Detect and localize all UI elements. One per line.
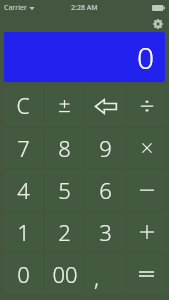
staticText: 0 [137, 37, 155, 78]
staticText: 4 [17, 175, 30, 205]
button[interactable]: Divide [127, 86, 166, 126]
button[interactable]: 7 [3, 128, 43, 168]
button[interactable]: 6 [86, 170, 125, 210]
button[interactable]: Backspace [86, 86, 125, 126]
button[interactable]: Plus [127, 212, 166, 252]
button[interactable]: Settings [151, 17, 165, 31]
staticText: , [94, 262, 99, 292]
staticText: 8 [58, 133, 71, 163]
button[interactable]: 0 [3, 254, 43, 294]
staticText: 00 [52, 259, 78, 289]
staticText: 3 [99, 217, 112, 247]
button[interactable]: Multiply [127, 128, 166, 168]
button[interactable]: Equals [127, 254, 166, 294]
button[interactable]: Decimal separator [86, 254, 125, 294]
button[interactable]: 3 [86, 212, 125, 252]
staticText: 2:28 AM [71, 3, 98, 13]
button[interactable]: 5 [45, 170, 84, 210]
staticText: Carrier [4, 3, 27, 13]
staticText: 5 [58, 175, 71, 205]
staticText: 2 [58, 217, 71, 247]
button[interactable]: 4 [3, 170, 43, 210]
staticText: 7 [17, 133, 30, 163]
button[interactable]: Minus [127, 170, 166, 210]
staticText: 0 [17, 259, 30, 289]
button[interactable]: 1 [3, 212, 43, 252]
button[interactable]: 0 [4, 32, 165, 82]
staticText: 9 [99, 133, 112, 163]
button[interactable]: Plus minus [45, 86, 84, 126]
button[interactable]: 9 [86, 128, 125, 168]
button[interactable]: 00 [45, 254, 84, 294]
button[interactable]: 2 [45, 212, 84, 252]
button[interactable]: C [3, 86, 43, 126]
button[interactable]: 8 [45, 128, 84, 168]
staticText: 6 [99, 175, 112, 205]
staticText: C [16, 92, 30, 121]
staticText: 1 [17, 217, 30, 247]
